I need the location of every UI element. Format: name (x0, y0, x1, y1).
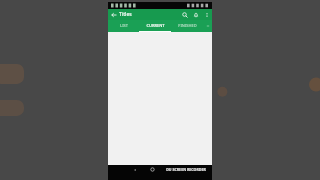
staticText: FINISHED (178, 23, 197, 28)
staticText: Titles (119, 11, 132, 18)
button[interactable]: FINISHED (171, 20, 203, 31)
staticText: CURRENT (146, 23, 165, 28)
button[interactable]: CURRENT (139, 20, 171, 31)
staticText: DU SCREEN RECORDER (166, 167, 206, 172)
button[interactable]: Navigate up (108, 9, 119, 20)
button[interactable]: LIST (108, 20, 139, 31)
button[interactable]: Search (179, 9, 190, 20)
button[interactable]: Titles (119, 9, 145, 20)
button[interactable]: Home (148, 165, 157, 174)
button[interactable]: More options (201, 9, 212, 20)
button[interactable]: Back (130, 165, 139, 174)
staticText: LIST (120, 23, 128, 28)
button[interactable]: More tabs (203, 20, 212, 31)
button[interactable]: Notifications (190, 9, 201, 20)
